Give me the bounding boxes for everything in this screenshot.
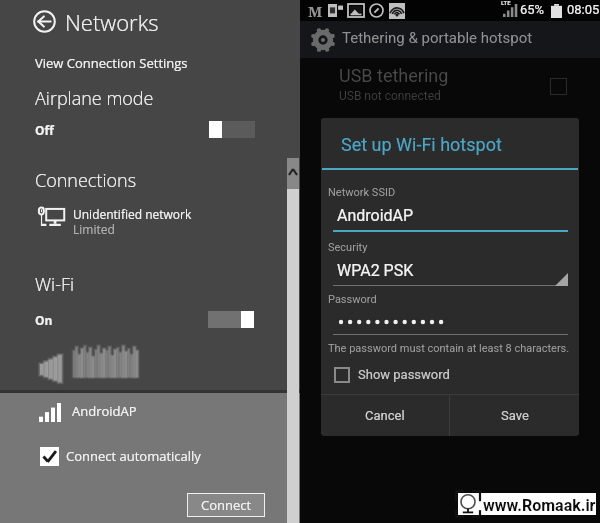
staticText: 65% [520,2,545,17]
button[interactable]: Tethering & portable hotspot [300,21,600,58]
staticText: Tethering & portable hotspot [342,29,533,47]
button[interactable]: Airplane mode off [209,121,255,138]
staticText: M [308,1,323,21]
button[interactable]: Show password [328,362,478,390]
button[interactable]: Connect automatically [38,444,228,472]
staticText: View Connection Settings [35,54,188,72]
button[interactable]: Cancel [321,395,449,436]
staticText: AndroidAP [72,402,137,420]
staticText: Save [501,408,529,423]
staticText: Off [35,122,54,138]
staticText: Limited [73,221,115,237]
staticText: Set up Wi-Fi hotspot [341,134,502,155]
staticText: Network SSID [328,186,396,199]
button[interactable]: View Connection Settings [35,54,190,73]
staticText: Unidentified network [73,206,192,222]
staticText: Airplane mode [35,86,154,111]
button[interactable]: Wi-Fi on [208,311,254,328]
staticText: AndroidAP [337,206,414,225]
button[interactable]: Unidentified network [33,203,233,238]
button[interactable]: Scroll up [287,158,299,189]
staticText: Connections [35,168,137,193]
staticText: 08:05 [567,2,600,17]
staticText: www.Romaak.ir [483,496,596,515]
staticText: Password [328,293,377,306]
button[interactable]: Back [28,4,193,42]
button[interactable]: Save [450,395,579,436]
staticText: On [35,312,53,328]
staticText: Security [328,241,368,254]
staticText: Show password [358,367,450,382]
button[interactable]: USB tethering [300,58,600,110]
staticText: Cancel [365,408,405,423]
staticText: USB not connected [339,89,441,103]
staticText: LTE [501,0,511,6]
staticText: The password must contain at least 8 cha… [328,342,570,355]
staticText: Connect [201,496,252,514]
staticText: USB tethering [339,65,449,86]
staticText: Wi-Fi [35,272,75,297]
staticText: WPA2 PSK [337,261,414,280]
staticText: Networks [65,7,159,37]
other: Back [33,10,56,33]
button[interactable]: Connect [187,493,265,517]
staticText: Connect automatically [66,447,201,465]
button[interactable]: AndroidAP [36,399,186,426]
